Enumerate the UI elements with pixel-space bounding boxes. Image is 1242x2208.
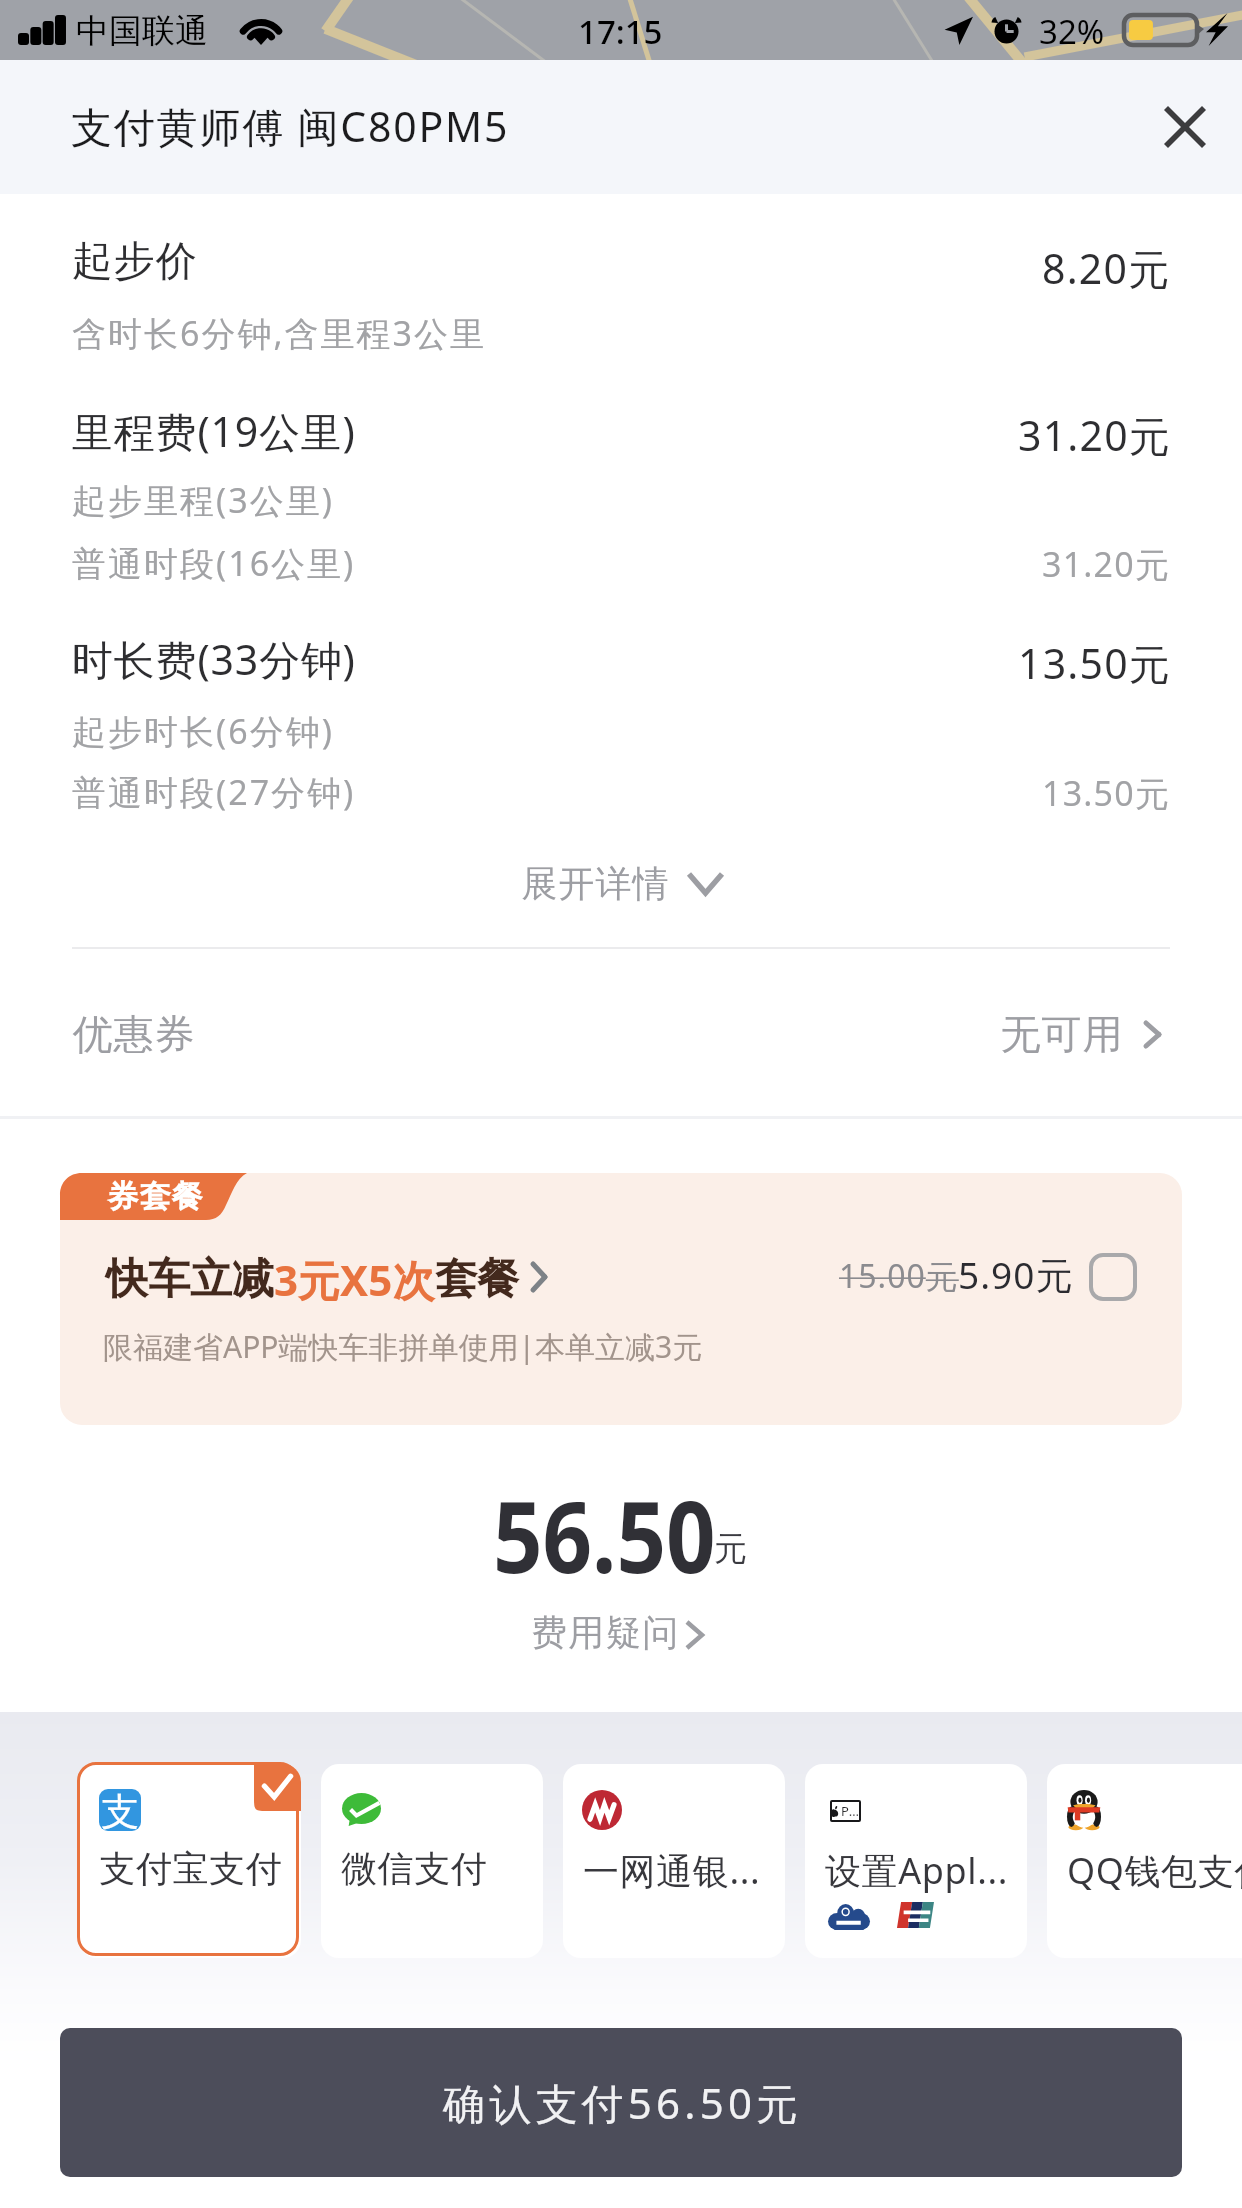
button[interactable]: Close	[1152, 94, 1218, 160]
staticText: 一网通银...	[583, 1846, 761, 1895]
staticText: 8.20元	[1042, 240, 1171, 296]
staticText: 3元X5次	[274, 1251, 435, 1308]
staticText: 普通时段(27分钟)	[72, 769, 356, 815]
staticText: 中国联通	[76, 10, 208, 52]
staticText: 含时长6分钟,含里程3公里	[72, 310, 487, 356]
staticText: 展开详情	[521, 861, 669, 906]
staticText: 设置Appl...	[825, 1846, 1008, 1895]
staticText: 普通时段(16公里)	[72, 540, 356, 586]
button[interactable]: 确认支付56.50元	[60, 2028, 1182, 2177]
staticText: 元	[714, 1528, 747, 1570]
staticText: 限福建省APP端快车非拼单使用|本单立减3元	[103, 1326, 703, 1367]
staticText: 56.50	[493, 1467, 716, 1602]
staticText: 确认支付56.50元	[443, 2074, 803, 2131]
staticText: 微信支付	[341, 1846, 488, 1891]
button[interactable]: 展开详情	[0, 845, 1242, 921]
staticText: 31.20元	[1018, 407, 1171, 463]
staticText: 无可用	[1000, 1009, 1123, 1059]
staticText: 快车立减	[106, 1253, 274, 1306]
button[interactable]: 支	[79, 1764, 301, 1958]
staticText: Pay	[841, 1802, 861, 1820]
staticText: 17:15	[578, 9, 663, 54]
button[interactable]: Select coupon package	[1089, 1253, 1137, 1301]
staticText: 起步价	[72, 236, 198, 288]
staticText: 13.50元	[1042, 770, 1171, 816]
staticText: 券套餐	[107, 1177, 203, 1216]
button[interactable]: 一网通银...	[563, 1764, 785, 1958]
staticText: 15.00元	[839, 1254, 959, 1298]
staticText: 套餐	[435, 1253, 519, 1306]
staticText: 支	[101, 1789, 139, 1830]
button[interactable]	[60, 1173, 1182, 1425]
button[interactable]: Pay	[805, 1764, 1027, 1958]
button[interactable]: 微信支付	[321, 1764, 543, 1958]
staticText: 时长费(33分钟)	[72, 631, 356, 687]
staticText: 里程费(19公里)	[72, 403, 356, 459]
button[interactable]: 费用疑问	[505, 1598, 737, 1668]
button[interactable]	[0, 950, 1242, 1116]
staticText: 起步里程(3公里)	[72, 477, 334, 523]
staticText: 支付黄师傅 闽C80PM5	[71, 98, 510, 154]
staticText: 13.50元	[1018, 635, 1171, 691]
button[interactable]: QQ钱包支付	[1047, 1764, 1242, 1958]
staticText: 起步时长(6分钟)	[72, 708, 334, 754]
staticText: 支付宝支付	[99, 1846, 282, 1891]
staticText: 5.90元	[958, 1249, 1074, 1300]
staticText: 费用疑问	[531, 1610, 680, 1655]
staticText: 32%	[1039, 9, 1105, 54]
staticText: 优惠券	[72, 1009, 195, 1059]
staticText: 31.20元	[1042, 541, 1171, 587]
staticText: QQ钱包支付	[1067, 1846, 1242, 1895]
